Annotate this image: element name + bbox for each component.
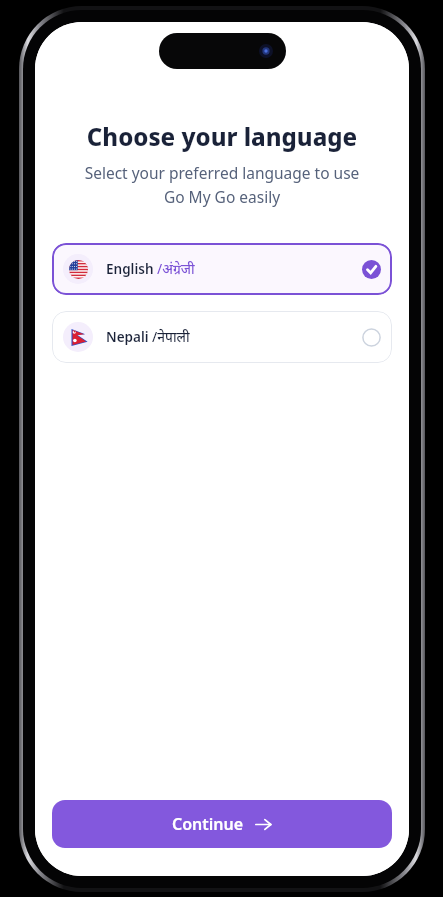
other: Selected	[362, 260, 381, 279]
staticText: Nepali /नेपाली	[106, 328, 190, 346]
staticText: English /अंग्रेजी	[106, 260, 195, 278]
staticText: Choose your language	[35, 120, 409, 153]
button[interactable]: English /अंग्रेजी	[52, 243, 392, 295]
other: Not selected	[362, 328, 381, 347]
button[interactable]: Nepali /नेपाली	[52, 311, 392, 363]
staticText: Continue	[172, 813, 244, 835]
staticText: Select your preferred language to use Go…	[51, 162, 393, 207]
button[interactable]: Continue	[52, 800, 392, 848]
